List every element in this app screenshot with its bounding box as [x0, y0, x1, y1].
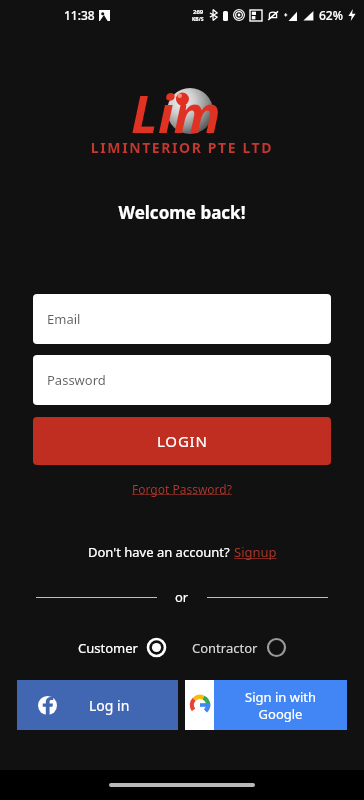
staticText: LIMINTERIOR PTE LTD [67, 138, 297, 157]
staticText: Don't have an account? [88, 543, 234, 561]
staticText: Sign in with Google [245, 688, 316, 723]
button[interactable]: LOGIN [33, 417, 331, 465]
staticText: Welcome back! [0, 201, 364, 224]
staticText: Customer [78, 639, 138, 657]
staticText: Log in [89, 696, 130, 715]
button[interactable]: Signup [234, 543, 277, 561]
staticText: 11:38 [64, 7, 95, 23]
staticText: LOGIN [157, 431, 208, 451]
button[interactable]: Email [33, 294, 331, 344]
button[interactable]: Sign in with Google [185, 680, 347, 730]
staticText: 269 [193, 8, 204, 16]
staticText: Contractor [192, 639, 258, 657]
button[interactable]: Log in [17, 680, 178, 730]
staticText: KB/S [192, 16, 204, 23]
staticText: Password [47, 371, 106, 389]
staticText: Email [47, 310, 81, 328]
button[interactable]: Contractor [192, 638, 286, 657]
button[interactable]: Forgot Password? [132, 481, 232, 497]
staticText: or [175, 588, 189, 606]
button[interactable]: Customer [78, 638, 166, 657]
button[interactable]: Password [33, 355, 331, 405]
staticText: Lim [131, 77, 221, 148]
staticText: 62% [319, 7, 343, 23]
